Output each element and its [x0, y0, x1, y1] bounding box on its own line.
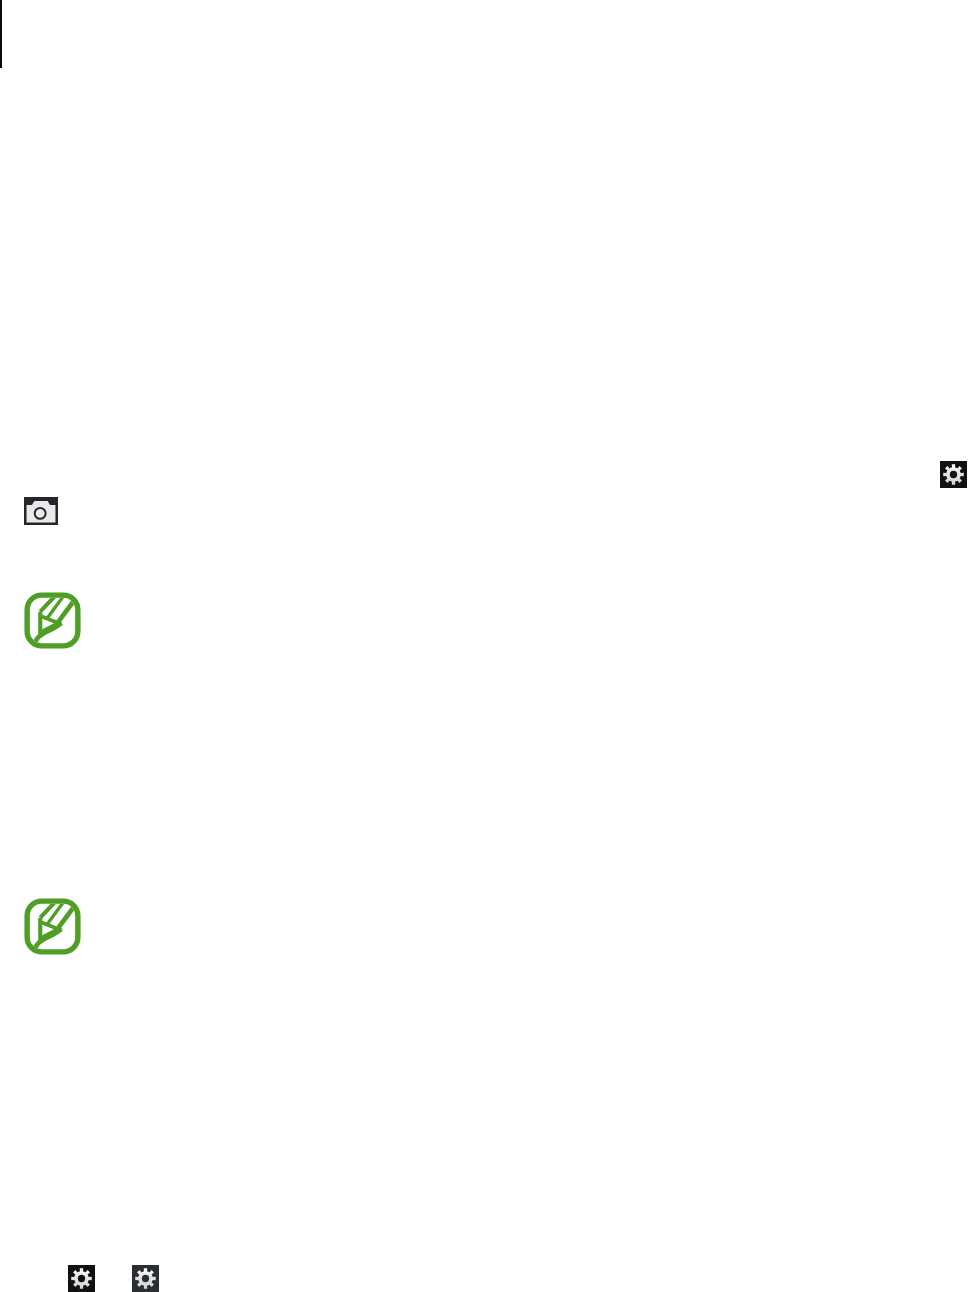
button[interactable]: Camera — [24, 497, 58, 525]
button[interactable]: Settings — [940, 461, 967, 488]
button[interactable]: Settings — [132, 1265, 159, 1292]
button[interactable]: Settings — [68, 1265, 95, 1292]
button[interactable]: Action memo — [24, 898, 81, 955]
button[interactable]: Action memo — [24, 592, 81, 649]
